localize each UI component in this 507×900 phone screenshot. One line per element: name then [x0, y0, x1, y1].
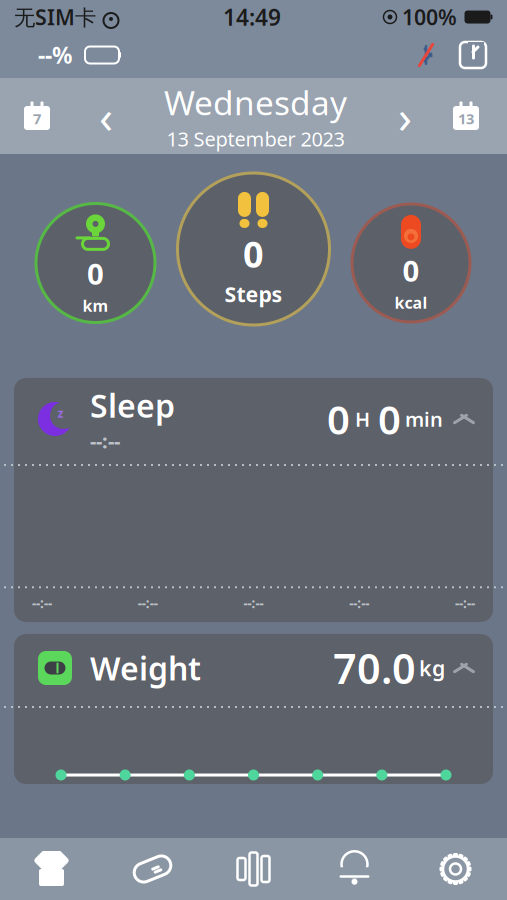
button[interactable]: ‹	[82, 92, 130, 140]
staticText: --:--	[349, 594, 369, 612]
staticText: Sleep	[90, 384, 175, 426]
button[interactable]: 0	[36, 203, 155, 322]
staticText: 0	[402, 251, 419, 290]
button[interactable]: 0	[177, 173, 329, 325]
button[interactable]: 0	[352, 204, 470, 322]
staticText: --%	[38, 40, 72, 70]
button[interactable]	[413, 41, 439, 69]
button[interactable]: ›	[381, 92, 429, 140]
button[interactable]: Weight	[14, 634, 493, 784]
button[interactable]: z	[14, 378, 493, 622]
staticText: 7	[33, 109, 41, 128]
staticText: kcal	[394, 292, 427, 313]
staticText: 0	[87, 254, 104, 293]
staticText: Weight	[90, 647, 201, 689]
button[interactable]	[1, 838, 102, 900]
staticText: --:--	[90, 427, 120, 454]
staticText: 100%	[402, 3, 457, 31]
staticText: min	[405, 406, 443, 432]
staticText: 无SIM卡	[14, 3, 96, 31]
staticText: --:--	[32, 594, 52, 612]
staticText: 13 September 2023	[166, 125, 344, 152]
staticText: 0	[378, 392, 401, 445]
staticText: km	[82, 295, 108, 316]
button[interactable]	[102, 838, 203, 900]
staticText: kg	[419, 654, 445, 682]
button[interactable]: 13	[443, 90, 489, 142]
button[interactable]: 7	[14, 90, 60, 142]
staticText: Wednesday	[164, 80, 347, 124]
staticText: H	[355, 406, 370, 432]
button[interactable]	[304, 838, 405, 900]
button[interactable]	[457, 39, 489, 71]
staticText: ‹	[99, 86, 113, 146]
staticText: 14:49	[223, 2, 281, 32]
button[interactable]	[405, 838, 506, 900]
staticText: Steps	[224, 280, 282, 308]
staticText: z	[57, 405, 63, 421]
staticText: 13	[458, 109, 474, 128]
staticText: 70.0	[333, 641, 416, 695]
staticText: --:--	[243, 594, 263, 612]
staticText: 0	[243, 230, 264, 278]
staticText: --:--	[455, 594, 475, 612]
staticText: 0	[327, 392, 350, 445]
staticText: --:--	[138, 594, 158, 612]
button[interactable]	[203, 838, 304, 900]
staticText: ›	[398, 86, 412, 146]
